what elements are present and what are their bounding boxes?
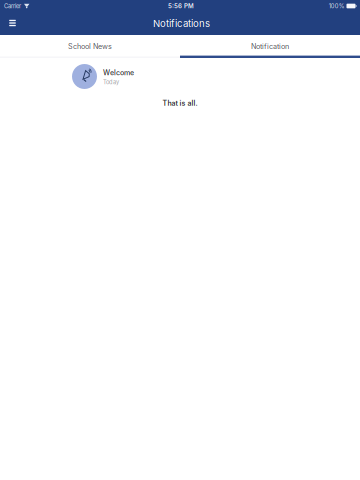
- button[interactable]: Welcome: [0, 64, 360, 89]
- staticText: Welcome: [103, 68, 134, 77]
- staticText: Carrier: [4, 2, 21, 10]
- staticText: Today: [103, 79, 119, 85]
- staticText: Notifications: [153, 18, 210, 29]
- staticText: That is all.: [162, 99, 197, 107]
- staticText: Notification: [251, 42, 289, 51]
- button[interactable]: Menu: [4, 15, 20, 31]
- staticText: 5:56 PM: [168, 2, 194, 10]
- staticText: School News: [68, 42, 112, 51]
- staticText: 100%: [329, 2, 345, 10]
- button[interactable]: Notification: [180, 35, 360, 58]
- button[interactable]: School News: [0, 35, 180, 58]
